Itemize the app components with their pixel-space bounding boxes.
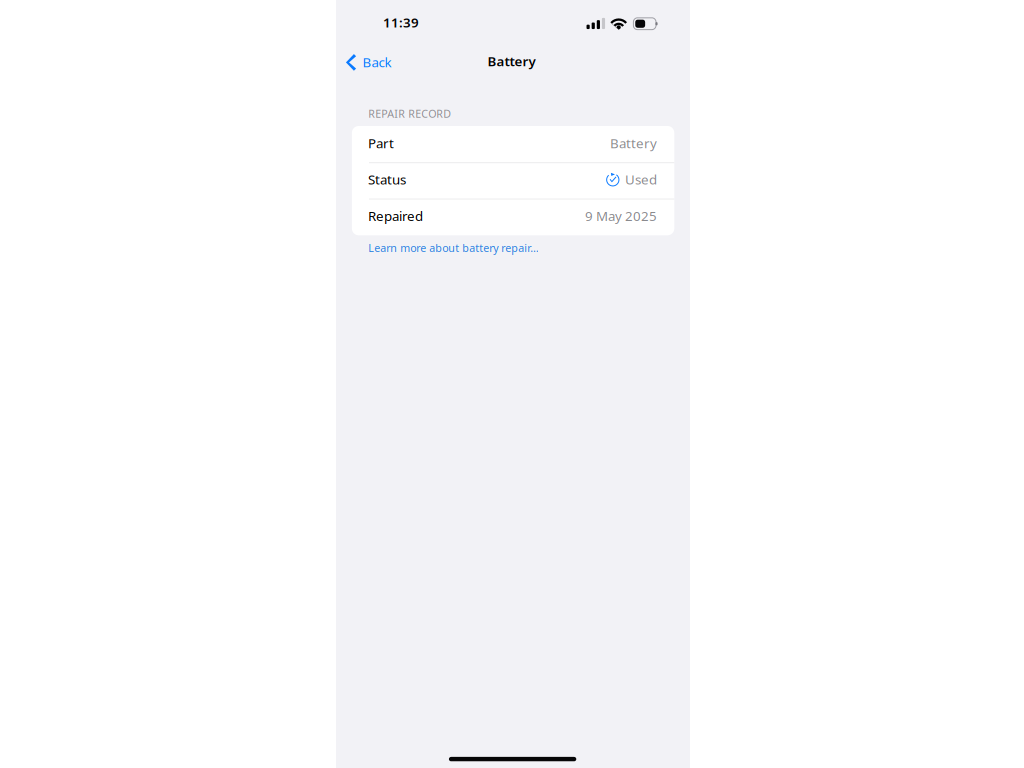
staticText: Repaired	[368, 207, 423, 225]
button[interactable]: Back	[344, 46, 401, 78]
button[interactable]: Repaired	[352, 198, 674, 234]
staticText: Battery	[610, 134, 657, 152]
staticText: Battery	[488, 52, 536, 70]
button[interactable]: Status	[352, 161, 674, 198]
staticText: Learn more about battery repair…	[368, 241, 538, 255]
button[interactable]: Part	[352, 125, 674, 161]
staticText: Status	[368, 171, 406, 188]
staticText: Used	[625, 171, 657, 188]
button[interactable]: Learn more about battery repair…	[368, 241, 538, 255]
staticText: 11:39	[383, 13, 419, 31]
staticText: REPAIR RECORD	[368, 106, 451, 121]
staticText: Part	[368, 134, 394, 152]
staticText: 9 May 2025	[585, 207, 657, 225]
staticText: Back	[362, 53, 391, 71]
